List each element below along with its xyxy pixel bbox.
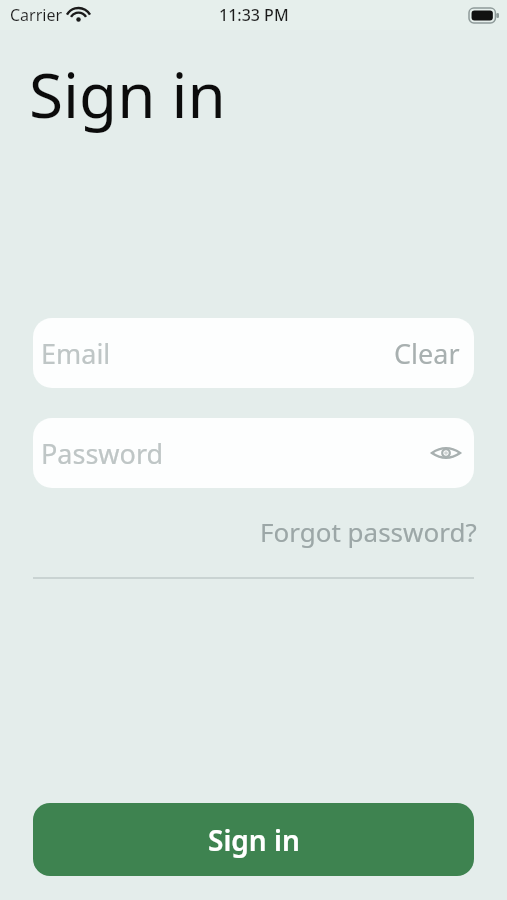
staticText: Email — [41, 335, 111, 372]
button[interactable]: Password — [33, 418, 474, 488]
staticText: Sign in — [29, 52, 226, 136]
button[interactable]: Email — [33, 318, 474, 388]
button[interactable]: Show password — [424, 431, 468, 475]
button[interactable]: Clear — [380, 327, 474, 380]
staticText: Clear — [394, 335, 460, 372]
staticText: Sign in — [208, 821, 300, 859]
button[interactable]: Sign in — [33, 803, 474, 876]
staticText: Forgot password? — [260, 514, 477, 549]
staticText: 11:33 PM — [219, 4, 289, 26]
staticText: Password — [41, 435, 164, 472]
staticText: Carrier — [10, 4, 63, 26]
button[interactable]: Forgot password? — [252, 510, 485, 553]
